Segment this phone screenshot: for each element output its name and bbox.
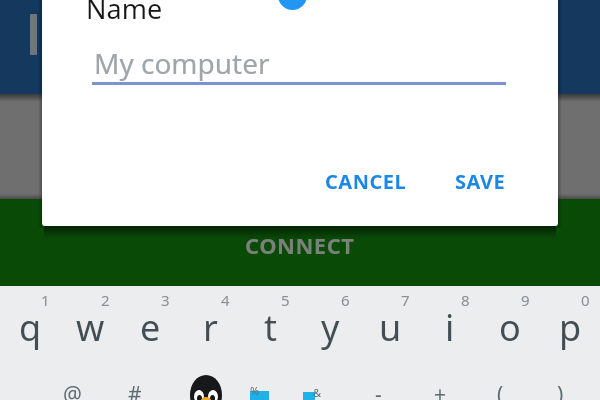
staticText: % xyxy=(250,383,260,397)
staticText: 8 xyxy=(461,290,470,306)
staticText: 1 xyxy=(41,290,50,306)
button[interactable]: 5 xyxy=(240,286,300,356)
button[interactable]: My computer xyxy=(92,30,508,86)
staticText: @ xyxy=(63,380,82,400)
staticText: - xyxy=(375,380,382,400)
button[interactable]: @ xyxy=(42,372,102,400)
staticText: 4 xyxy=(221,290,230,306)
staticText: 6 xyxy=(341,290,350,306)
staticText: + xyxy=(434,380,447,400)
button[interactable]: 6 xyxy=(300,286,360,356)
button[interactable]: # xyxy=(105,372,165,400)
button[interactable]: ( xyxy=(470,372,530,400)
button[interactable] xyxy=(176,370,236,400)
staticText: 3 xyxy=(161,290,170,306)
staticText: CANCEL xyxy=(325,168,407,195)
staticText: o xyxy=(499,303,521,352)
staticText: p xyxy=(559,303,582,352)
staticText: & xyxy=(313,385,322,399)
button[interactable]: CANCEL xyxy=(318,166,414,196)
button[interactable]: 1 xyxy=(0,286,60,356)
staticText: t xyxy=(264,303,277,352)
staticText: Name xyxy=(86,0,163,27)
button[interactable]: 2 xyxy=(60,286,120,356)
staticText: My computer xyxy=(94,44,270,82)
staticText: SAVE xyxy=(455,168,506,195)
button[interactable]: CONNECT xyxy=(0,199,600,286)
button[interactable]: 0 xyxy=(540,286,600,356)
button[interactable]: SAVE xyxy=(446,166,514,196)
staticText: u xyxy=(379,303,402,352)
button[interactable]: 3 xyxy=(120,286,180,356)
staticText: 0 xyxy=(581,290,590,306)
button[interactable]: 8 xyxy=(420,286,480,356)
staticText: i xyxy=(445,303,455,352)
button[interactable]: ) xyxy=(530,372,590,400)
button[interactable] xyxy=(303,392,315,400)
staticText: 9 xyxy=(521,290,530,306)
staticText: y xyxy=(321,303,340,352)
staticText: r xyxy=(203,303,218,352)
button[interactable] xyxy=(250,391,269,400)
button[interactable]: 9 xyxy=(480,286,540,356)
staticText: # xyxy=(128,380,142,400)
staticText: ) xyxy=(557,380,564,400)
button[interactable]: 4 xyxy=(180,286,240,356)
staticText: q xyxy=(19,303,42,352)
button[interactable]: - xyxy=(348,372,408,400)
staticText: CONNECT xyxy=(245,230,355,260)
staticText: 7 xyxy=(401,290,410,306)
staticText: 5 xyxy=(281,290,290,306)
staticText: ( xyxy=(497,380,504,400)
staticText: e xyxy=(140,303,161,352)
button[interactable]: 7 xyxy=(360,286,420,356)
staticText: 2 xyxy=(101,290,110,306)
staticText: w xyxy=(76,303,105,352)
button[interactable]: + xyxy=(410,372,470,400)
